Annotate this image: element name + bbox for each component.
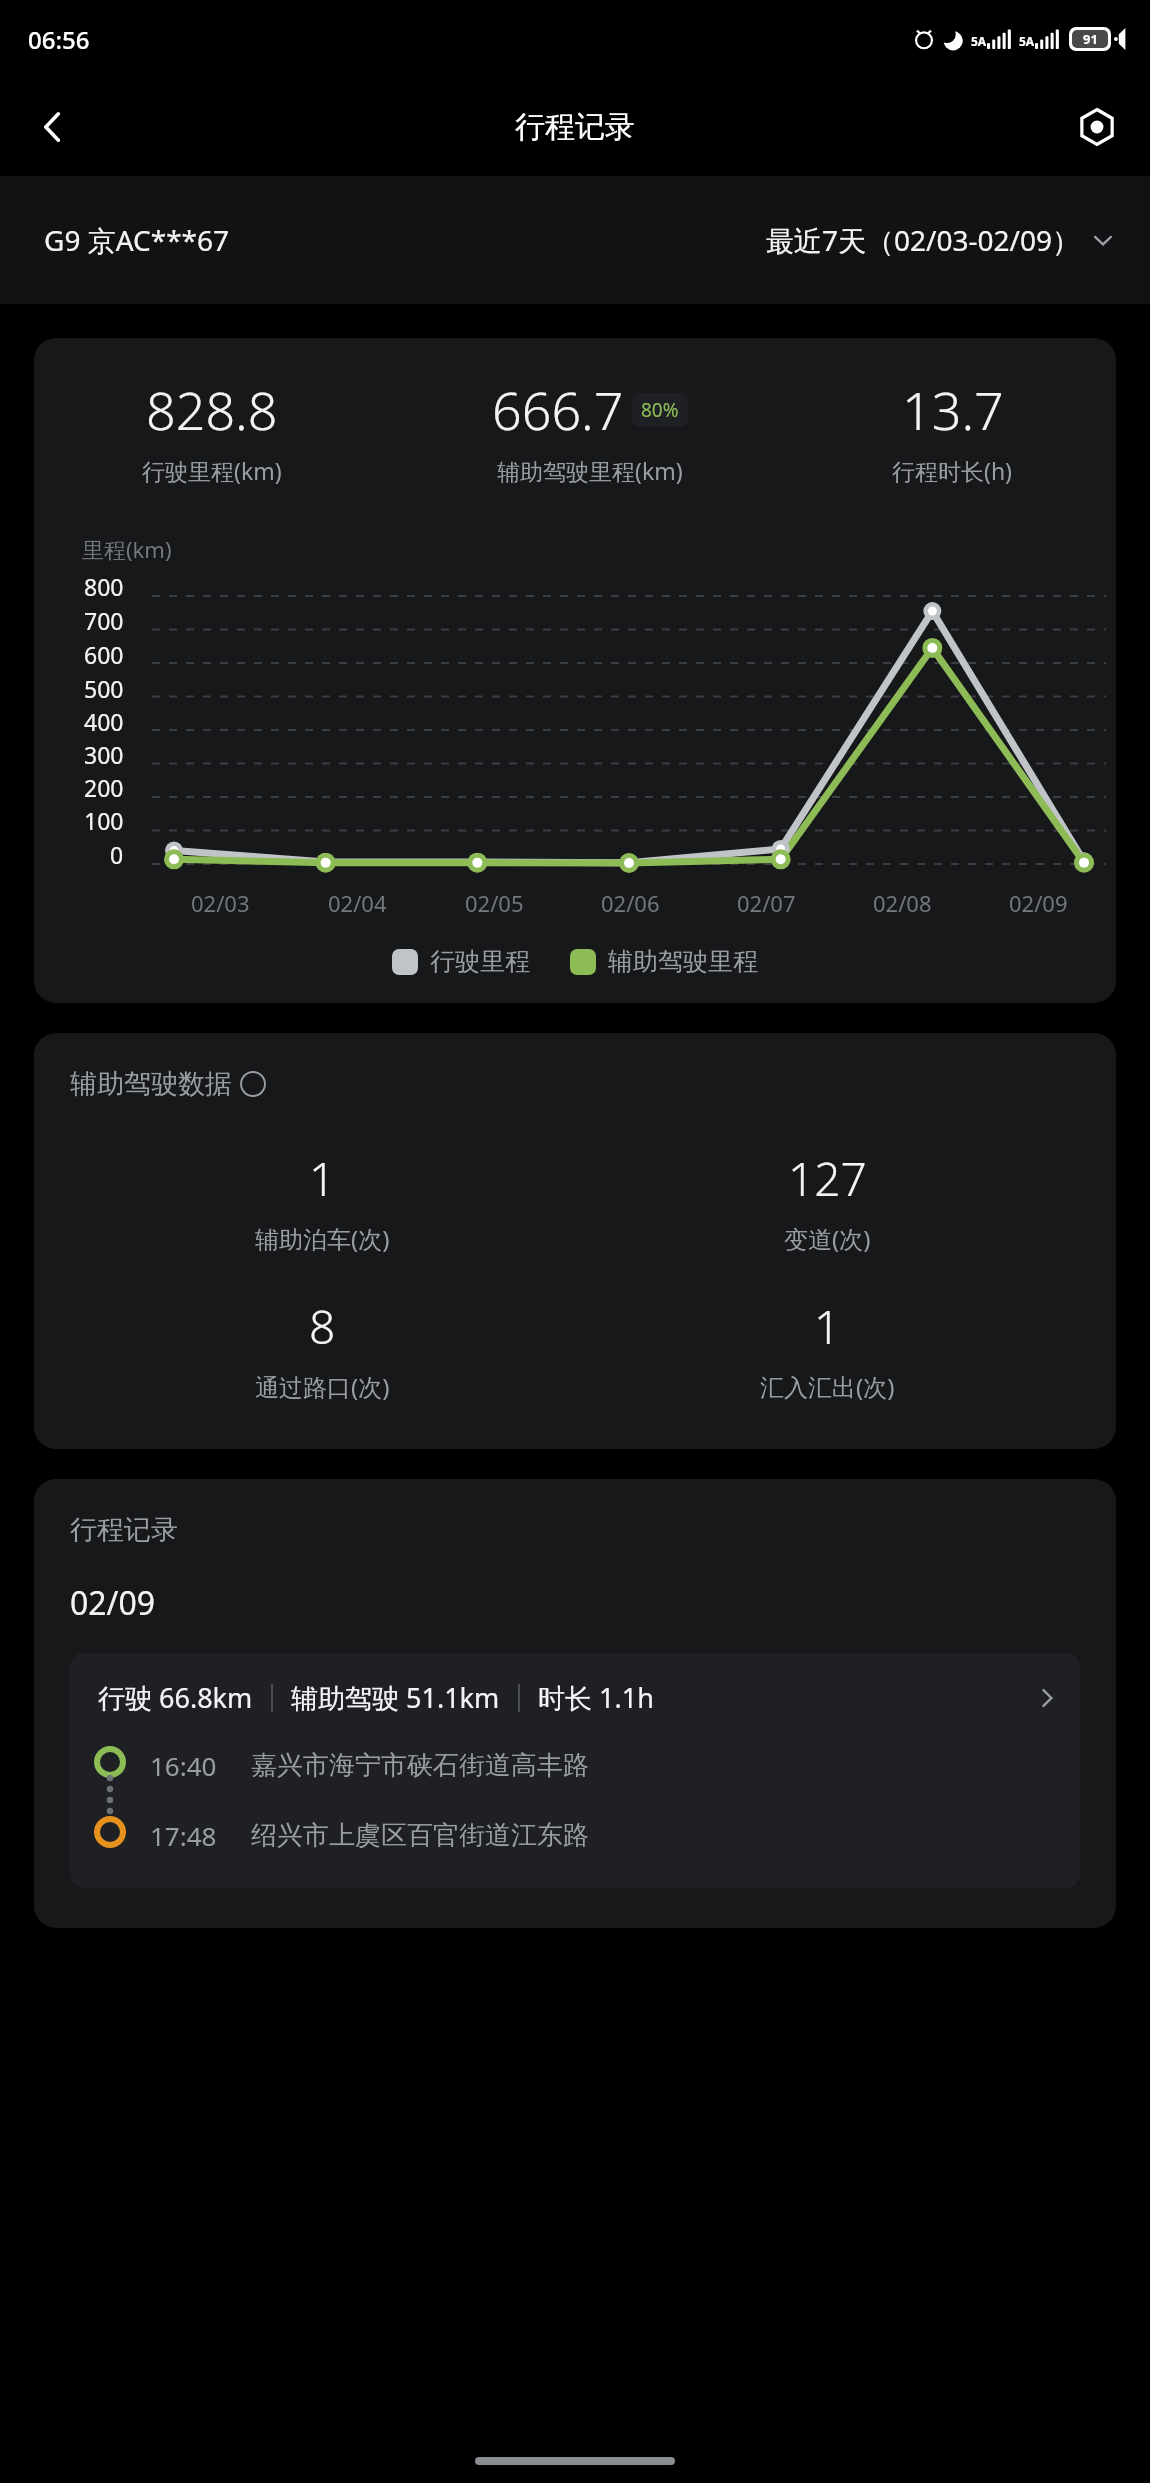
staticText: 06:56: [28, 23, 90, 56]
staticText: 辅助驾驶里程(km): [497, 455, 683, 486]
staticText: 91: [1083, 30, 1098, 48]
staticText: 02/06: [601, 888, 660, 918]
button[interactable]: Back: [22, 96, 84, 158]
staticText: 127: [788, 1147, 867, 1210]
staticText: 16:40: [150, 1748, 217, 1783]
staticText: 13.7: [902, 374, 1004, 445]
staticText: 1: [814, 1295, 841, 1358]
staticText: 700: [84, 605, 124, 636]
staticText: 行程记录: [515, 108, 635, 146]
staticText: 02/09: [1009, 888, 1068, 918]
staticText: 666.7: [492, 374, 624, 445]
staticText: 02/03: [191, 888, 250, 918]
staticText: 500: [84, 673, 124, 704]
staticText: 行程记录: [70, 1513, 178, 1547]
staticText: 400: [84, 706, 124, 737]
staticText: 300: [84, 739, 124, 770]
staticText: 行驶里程(km): [142, 455, 282, 486]
staticText: 行驶里程: [430, 946, 530, 977]
staticText: 02/05: [465, 888, 524, 918]
staticText: 02/04: [328, 888, 387, 918]
button[interactable]: 最近7天（02/03-02/09）: [766, 221, 1114, 259]
staticText: 最近7天（02/03-02/09）: [766, 221, 1080, 259]
staticText: 828.8: [146, 374, 278, 445]
staticText: 嘉兴市海宁市硖石街道高丰路: [251, 1749, 589, 1782]
staticText: 200: [84, 772, 124, 803]
staticText: 02/08: [873, 888, 932, 918]
staticText: 时长 1.1h: [538, 1679, 654, 1716]
staticText: 行程时长(h): [892, 455, 1013, 486]
staticText: 02/07: [737, 888, 796, 918]
staticText: 5A: [971, 33, 987, 49]
staticText: 02/09: [70, 1581, 156, 1625]
staticText: 80%: [641, 397, 679, 423]
button[interactable]: 行驶 66.8km: [70, 1653, 1080, 1888]
staticText: 0: [110, 839, 124, 870]
button[interactable]: G9 京AC***67: [44, 221, 230, 259]
button[interactable]: More options: [1066, 96, 1128, 158]
staticText: 辅助驾驶 51.1km: [291, 1679, 500, 1716]
staticText: 17:48: [150, 1818, 217, 1853]
button[interactable]: 辅助驾驶数据: [70, 1067, 266, 1101]
staticText: 辅助泊车(次): [255, 1222, 390, 1255]
staticText: 行驶 66.8km: [98, 1679, 253, 1716]
staticText: 600: [84, 639, 124, 670]
staticText: 变道(次): [784, 1222, 871, 1255]
staticText: 1: [309, 1147, 336, 1210]
staticText: 里程(km): [82, 534, 172, 564]
staticText: 汇入汇出(次): [760, 1370, 895, 1403]
staticText: 800: [84, 571, 124, 602]
staticText: 辅助驾驶数据: [70, 1067, 232, 1101]
staticText: 100: [84, 805, 124, 836]
staticText: 5A: [1019, 33, 1035, 49]
staticText: 通过路口(次): [255, 1370, 390, 1403]
staticText: 辅助驾驶里程: [608, 946, 758, 977]
staticText: 8: [309, 1295, 336, 1358]
staticText: 绍兴市上虞区百官街道江东路: [251, 1819, 589, 1852]
